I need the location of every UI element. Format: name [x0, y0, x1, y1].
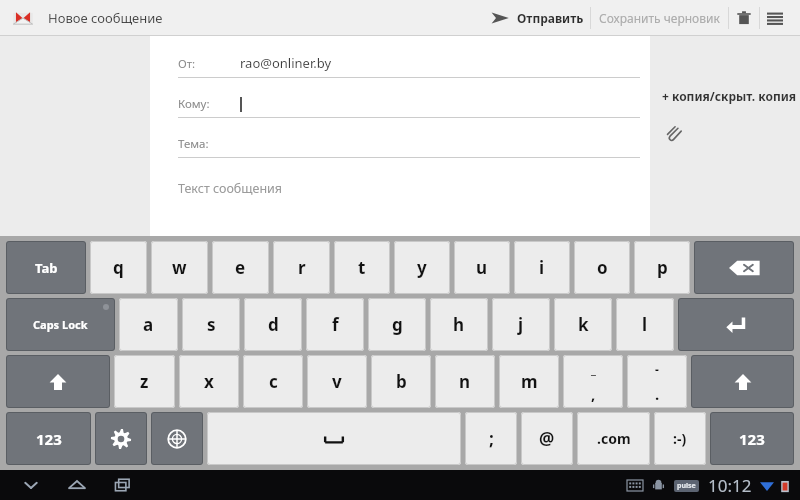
staticText: r — [298, 256, 306, 279]
staticText: .com — [597, 429, 631, 448]
staticText: f — [332, 313, 339, 336]
staticText: h — [453, 313, 465, 336]
button[interactable]: c — [243, 355, 303, 408]
button[interactable]: h — [430, 298, 488, 351]
staticText: _ — [591, 361, 596, 377]
staticText: pulse — [677, 481, 696, 491]
button[interactable]: Shift — [6, 355, 110, 408]
staticText: m — [521, 370, 538, 393]
staticText: . — [655, 384, 660, 404]
staticText: Сохранить черновик — [599, 10, 720, 26]
button[interactable]: Enter — [678, 298, 794, 351]
button[interactable]: s — [182, 298, 240, 351]
staticText: v — [332, 370, 342, 393]
button[interactable]: ; — [465, 412, 517, 465]
staticText: j — [518, 313, 524, 336]
staticText: Caps Lock — [33, 317, 88, 332]
button[interactable]: Gmail — [10, 5, 36, 31]
button[interactable]: Язык — [151, 412, 203, 465]
button[interactable]: a — [119, 298, 178, 351]
button[interactable]: Caps Lock — [6, 298, 115, 351]
button[interactable]: 123 — [710, 412, 794, 465]
staticText: От: — [178, 56, 196, 72]
staticText: s — [207, 313, 216, 336]
button[interactable]: Shift — [691, 355, 794, 408]
staticText: c — [269, 370, 278, 393]
staticText: p — [657, 256, 668, 279]
button[interactable]: + копия/скрыт. копия — [662, 88, 797, 104]
button[interactable]: o — [574, 241, 630, 294]
staticText: w — [172, 256, 187, 279]
button[interactable]: k — [554, 298, 612, 351]
button[interactable]: Отправить — [484, 8, 590, 28]
staticText: x — [204, 370, 214, 393]
staticText: , — [591, 384, 596, 404]
staticText: g — [392, 313, 403, 336]
button[interactable]: x — [179, 355, 239, 408]
button[interactable]: p — [634, 241, 690, 294]
staticText: e — [235, 256, 246, 279]
button[interactable]: e — [212, 241, 269, 294]
button[interactable]: Удалить — [729, 3, 759, 33]
button[interactable]: Backspace — [694, 241, 794, 294]
button[interactable]: Прикрепить файл — [662, 122, 686, 146]
button[interactable]: Домой — [60, 470, 94, 500]
button[interactable]: :-) — [654, 412, 706, 465]
button[interactable]: r — [273, 241, 330, 294]
staticText: @ — [539, 427, 555, 450]
staticText: :-) — [673, 429, 687, 448]
staticText: y — [417, 256, 427, 279]
button[interactable]: v — [307, 355, 367, 408]
staticText: ; — [489, 427, 494, 450]
staticText: + копия/скрыт. копия — [662, 88, 797, 104]
button[interactable]: .com — [577, 412, 650, 465]
button[interactable]: l — [616, 298, 674, 351]
button[interactable]: z — [114, 355, 175, 408]
staticText: 123 — [739, 429, 765, 449]
button[interactable]: Пробел — [207, 412, 461, 465]
staticText: Новое сообщение — [48, 9, 163, 27]
staticText: q — [113, 256, 124, 279]
staticText: d — [268, 313, 279, 336]
staticText: b — [396, 370, 407, 393]
button[interactable]: Настройки — [95, 412, 147, 465]
staticText: Кому: — [178, 96, 210, 112]
staticText: k — [578, 313, 589, 336]
button[interactable]: q — [90, 241, 147, 294]
staticText: u — [476, 256, 488, 279]
staticText: Tab — [35, 259, 58, 277]
staticText: - — [655, 361, 659, 377]
staticText: Отправить — [517, 10, 584, 26]
staticText: 10:12 — [708, 474, 752, 497]
button[interactable]: _ — [563, 355, 623, 408]
button[interactable]: w — [151, 241, 208, 294]
button[interactable]: @ — [521, 412, 573, 465]
button[interactable]: Tab — [6, 241, 86, 294]
button[interactable]: 123 — [6, 412, 91, 465]
staticText: Тема: — [178, 136, 209, 152]
button[interactable]: u — [454, 241, 510, 294]
button[interactable]: i — [514, 241, 570, 294]
button[interactable]: n — [435, 355, 495, 408]
button[interactable]: m — [499, 355, 559, 408]
button[interactable]: Скрыть клавиатуру — [14, 470, 48, 500]
staticText: a — [143, 313, 154, 336]
button[interactable]: Сохранить черновик — [591, 10, 728, 26]
staticText: i — [539, 256, 545, 279]
staticText: t — [358, 256, 366, 279]
staticText: Текст сообщения — [178, 180, 283, 197]
staticText: n — [459, 370, 471, 393]
button[interactable]: - — [627, 355, 687, 408]
button[interactable]: f — [306, 298, 364, 351]
button[interactable]: t — [334, 241, 390, 294]
button[interactable]: j — [492, 298, 550, 351]
button[interactable]: g — [368, 298, 426, 351]
button[interactable]: Меню — [760, 3, 790, 33]
button[interactable]: b — [371, 355, 431, 408]
button[interactable]: y — [394, 241, 450, 294]
staticText: l — [642, 313, 648, 336]
button[interactable]: Недавние приложения — [106, 470, 140, 500]
staticText: 123 — [36, 429, 62, 449]
staticText: o — [597, 256, 608, 279]
button[interactable]: d — [244, 298, 302, 351]
